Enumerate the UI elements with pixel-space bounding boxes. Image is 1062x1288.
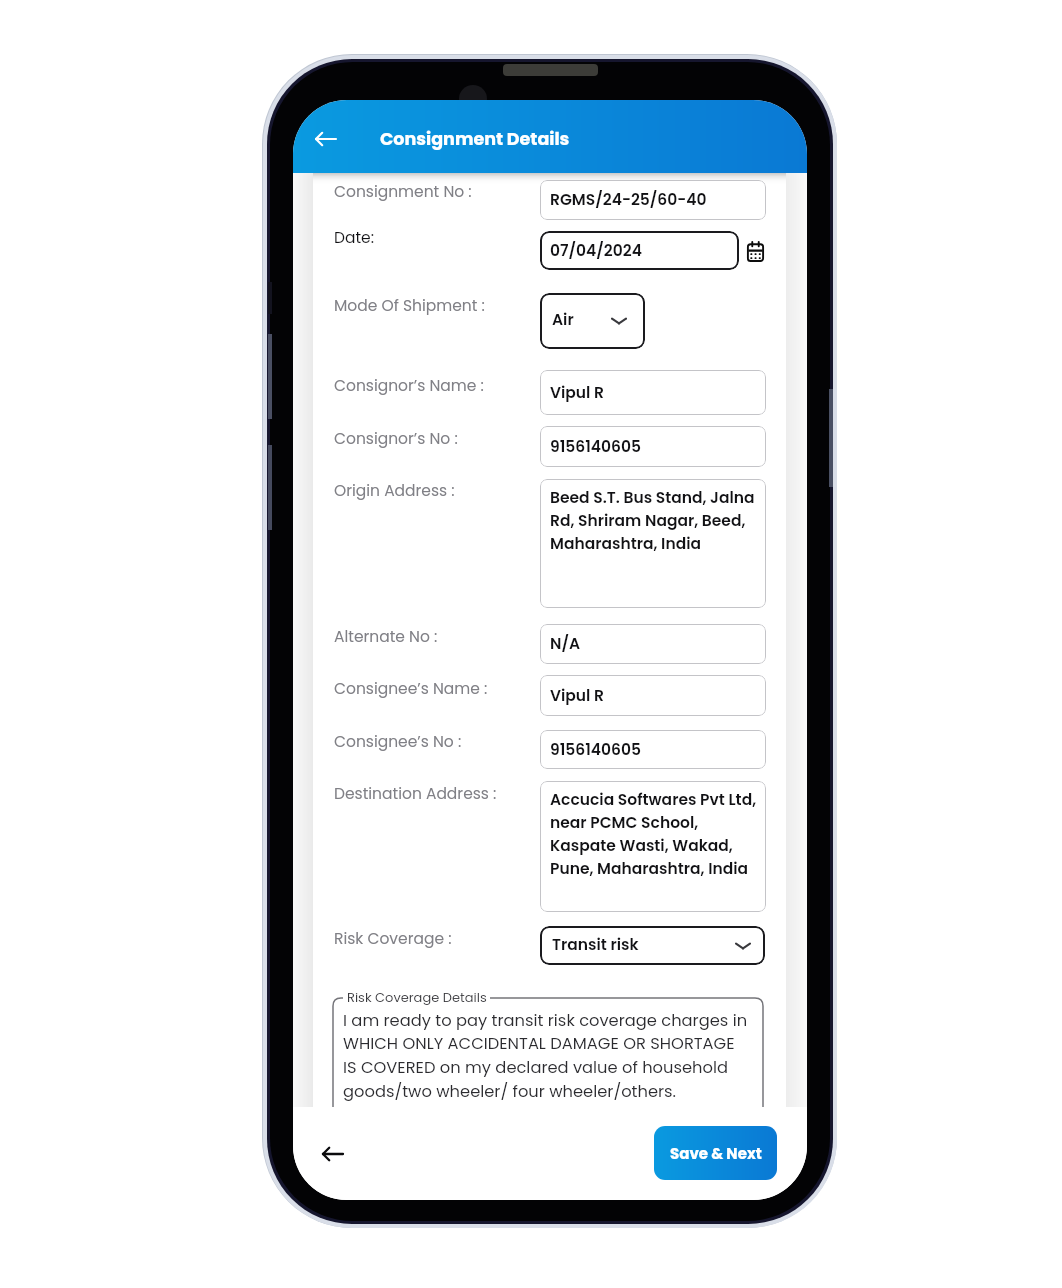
staticText: N/A xyxy=(550,633,581,655)
staticText: Air xyxy=(552,309,574,331)
staticText: Consignment Details xyxy=(380,127,570,152)
staticText: RGMS/24-25/60-40 xyxy=(550,189,707,211)
staticText: Alternate No : xyxy=(334,626,438,648)
staticText: Mode Of Shipment : xyxy=(334,295,485,317)
staticText: Transit risk xyxy=(552,934,639,956)
staticText: 9156140605 xyxy=(550,739,642,761)
button[interactable]: Vipul R xyxy=(540,675,766,716)
staticText: Consignor’s Name : xyxy=(334,375,484,397)
button[interactable]: 9156140605 xyxy=(540,730,766,769)
button[interactable]: 9156140605 xyxy=(540,426,766,467)
staticText: Destination Address : xyxy=(334,783,497,805)
staticText: Consignee’s No : xyxy=(334,731,462,753)
staticText: I am ready to pay transit risk coverage … xyxy=(343,1009,759,1103)
staticText: Beed S.T. Bus Stand, Jalna Rd, Shriram N… xyxy=(550,487,758,554)
button[interactable]: Back xyxy=(310,123,342,155)
staticText: Risk Coverage Details xyxy=(347,988,487,1006)
button[interactable]: Accucia Softwares Pvt Ltd, near PCMC Sch… xyxy=(540,781,766,912)
staticText: Consignor’s No : xyxy=(334,428,458,450)
button[interactable]: Save & Next xyxy=(654,1126,777,1180)
staticText: Risk Coverage : xyxy=(334,928,452,950)
staticText: Vipul R xyxy=(550,685,605,707)
staticText: Date: xyxy=(334,227,374,249)
staticText: Origin Address : xyxy=(334,480,455,502)
staticText: 9156140605 xyxy=(550,436,642,458)
staticText: Vipul R xyxy=(550,382,605,404)
button[interactable]: RGMS/24-25/60-40 xyxy=(540,180,766,220)
button[interactable]: Back xyxy=(317,1138,349,1170)
staticText: Accucia Softwares Pvt Ltd, near PCMC Sch… xyxy=(550,789,758,879)
staticText: Save & Next xyxy=(670,1143,762,1164)
button[interactable]: Transit risk xyxy=(540,926,765,965)
button[interactable]: Vipul R xyxy=(540,370,766,415)
button[interactable]: Air xyxy=(540,293,645,349)
button[interactable]: Beed S.T. Bus Stand, Jalna Rd, Shriram N… xyxy=(540,479,766,608)
button[interactable]: 07/04/2024 xyxy=(540,231,739,270)
button[interactable]: N/A xyxy=(540,624,766,664)
staticText: Consignee’s Name : xyxy=(334,678,488,700)
staticText: Consignment No : xyxy=(334,181,472,203)
staticText: 07/04/2024 xyxy=(550,240,642,262)
